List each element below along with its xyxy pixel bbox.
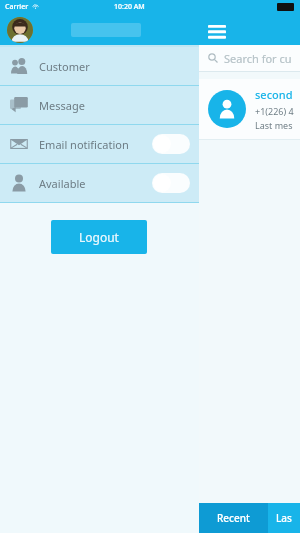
staticText: Las: [276, 511, 292, 525]
staticText: Recent: [217, 511, 250, 525]
staticText: Available: [39, 176, 86, 191]
staticText: 10:20 AM: [114, 2, 145, 12]
staticText: Last mes: [255, 119, 293, 131]
button[interactable]: Email notification: [0, 125, 199, 163]
button[interactable]: Available: [0, 164, 199, 202]
staticText: Customer: [39, 59, 90, 74]
button[interactable]: Email notification toggle: [152, 134, 190, 154]
button[interactable]: Customer: [0, 47, 199, 85]
button[interactable]: second: [199, 79, 300, 139]
staticText: +1(226) 4: [255, 105, 294, 117]
button[interactable]: Las: [268, 503, 300, 533]
staticText: second: [255, 87, 293, 102]
button[interactable]: Menu: [206, 19, 228, 41]
staticText: Search for cu: [224, 51, 292, 66]
button[interactable]: Available toggle: [152, 173, 190, 193]
staticText: Carrier: [5, 2, 29, 12]
button[interactable]: Search for cu: [199, 45, 300, 71]
staticText: Logout: [79, 229, 119, 245]
staticText: Message: [39, 98, 85, 113]
button[interactable]: Message: [0, 86, 199, 124]
button[interactable]: Recent: [199, 503, 268, 533]
button[interactable]: Profile: [7, 17, 33, 43]
button[interactable]: Logout: [51, 220, 147, 254]
staticText: Email notification: [39, 137, 129, 152]
